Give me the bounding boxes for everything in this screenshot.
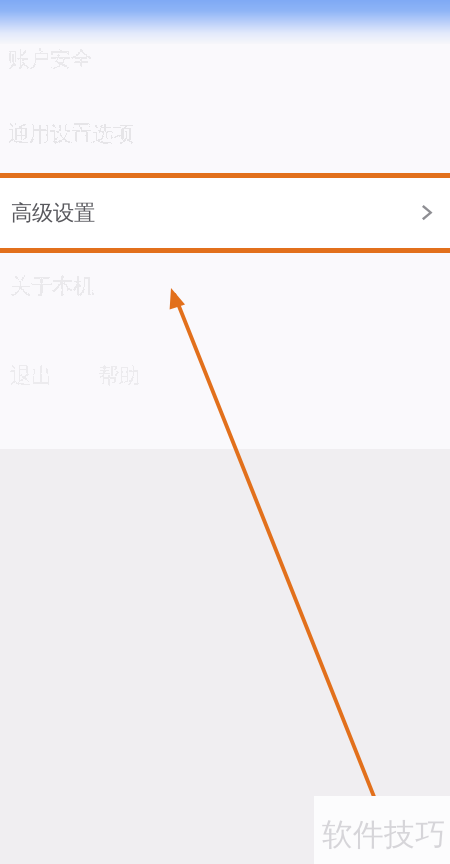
staticText: 通用设置选项 (8, 121, 134, 147)
staticText: 帮助 (98, 363, 140, 389)
staticText: 通用设置选项 (8, 121, 134, 147)
staticText: 账户安全 (8, 46, 92, 72)
staticText: 退出 (10, 363, 52, 389)
staticText: 账户安全 (8, 46, 92, 72)
staticText: 退出 (10, 363, 52, 389)
staticText: 关于本机 (10, 273, 94, 299)
staticText: 账户安全 (8, 46, 92, 72)
staticText: 通用设置选项 (8, 121, 134, 147)
staticText: 关于本机 (10, 273, 94, 299)
staticText: 关于本机 (10, 273, 94, 299)
staticText: 帮助 (98, 363, 140, 389)
staticText: 账户安全 (8, 46, 92, 72)
staticText: 帮助 (98, 363, 140, 389)
staticText: 帮助 (98, 363, 140, 389)
staticText: 账户安全 (8, 46, 92, 72)
staticText: 关于本机 (10, 273, 94, 299)
staticText: 帮助 (98, 363, 140, 389)
staticText: 退出 (10, 363, 52, 389)
staticText: 通用设置选项 (8, 121, 134, 147)
staticText: 帮助 (98, 363, 140, 389)
staticText: 通用设置选项 (8, 121, 134, 147)
button[interactable]: 高级设置 (0, 178, 450, 248)
staticText: 帮助 (98, 363, 140, 389)
staticText: 通用设置选项 (8, 121, 134, 147)
staticText: 通用设置选项 (8, 121, 134, 147)
staticText: 退出 (10, 363, 52, 389)
staticText: 退出 (10, 363, 52, 389)
staticText: 通用设置选项 (8, 121, 134, 147)
staticText: 通用设置选项 (8, 121, 134, 147)
staticText: 关于本机 (10, 273, 94, 299)
staticText: 关于本机 (10, 273, 94, 299)
staticText: 账户安全 (8, 46, 92, 72)
staticText: 通用设置选项 (8, 121, 134, 147)
staticText: 关于本机 (10, 273, 94, 299)
staticText: 账户安全 (8, 46, 92, 72)
staticText: 账户安全 (8, 46, 92, 72)
staticText: 账户安全 (8, 46, 92, 72)
staticText: 通用设置选项 (8, 121, 134, 147)
staticText: 通用设置选项 (8, 121, 134, 147)
staticText: 退出 (10, 363, 52, 389)
staticText: 帮助 (98, 363, 140, 389)
staticText: 退出 (10, 363, 52, 389)
staticText: 账户安全 (8, 46, 92, 72)
staticText: 账户安全 (8, 46, 92, 72)
staticText: 关于本机 (10, 273, 94, 299)
staticText: 关于本机 (10, 273, 94, 299)
staticText: 帮助 (98, 363, 140, 389)
staticText: 退出 (10, 363, 52, 389)
staticText: 关于本机 (10, 273, 94, 299)
staticText: 关于本机 (10, 273, 94, 299)
staticText: 账户安全 (8, 46, 92, 72)
staticText: 通用设置选项 (8, 121, 134, 147)
staticText: 通用设置选项 (8, 121, 134, 147)
staticText: 账户安全 (8, 46, 92, 72)
staticText: 关于本机 (10, 273, 94, 299)
staticText: 软件技巧 (322, 816, 446, 854)
staticText: 通用设置选项 (8, 121, 134, 147)
staticText: 退出 (10, 363, 52, 389)
staticText: 退出 (10, 363, 52, 389)
staticText: 通用设置选项 (8, 121, 134, 147)
staticText: 帮助 (98, 363, 140, 389)
staticText: 退出 (10, 363, 52, 389)
staticText: 账户安全 (8, 46, 92, 72)
staticText: 通用设置选项 (8, 121, 134, 147)
staticText: 帮助 (98, 363, 140, 389)
staticText: 关于本机 (10, 273, 94, 299)
staticText: 高级设置 (11, 200, 95, 226)
staticText: 通用设置选项 (8, 121, 134, 147)
staticText: 帮助 (98, 363, 140, 389)
staticText: 退出 (10, 363, 52, 389)
staticText: 退出 (10, 363, 52, 389)
staticText: 通用设置选项 (8, 121, 134, 147)
staticText: 帮助 (98, 363, 140, 389)
staticText: 账户安全 (8, 46, 92, 72)
staticText: 帮助 (98, 363, 140, 389)
staticText: 退出 (10, 363, 52, 389)
staticText: 关于本机 (10, 273, 94, 299)
staticText: 账户安全 (8, 46, 92, 72)
staticText: 关于本机 (10, 273, 94, 299)
staticText: 通用设置选项 (8, 121, 134, 147)
staticText: 关于本机 (10, 273, 94, 299)
